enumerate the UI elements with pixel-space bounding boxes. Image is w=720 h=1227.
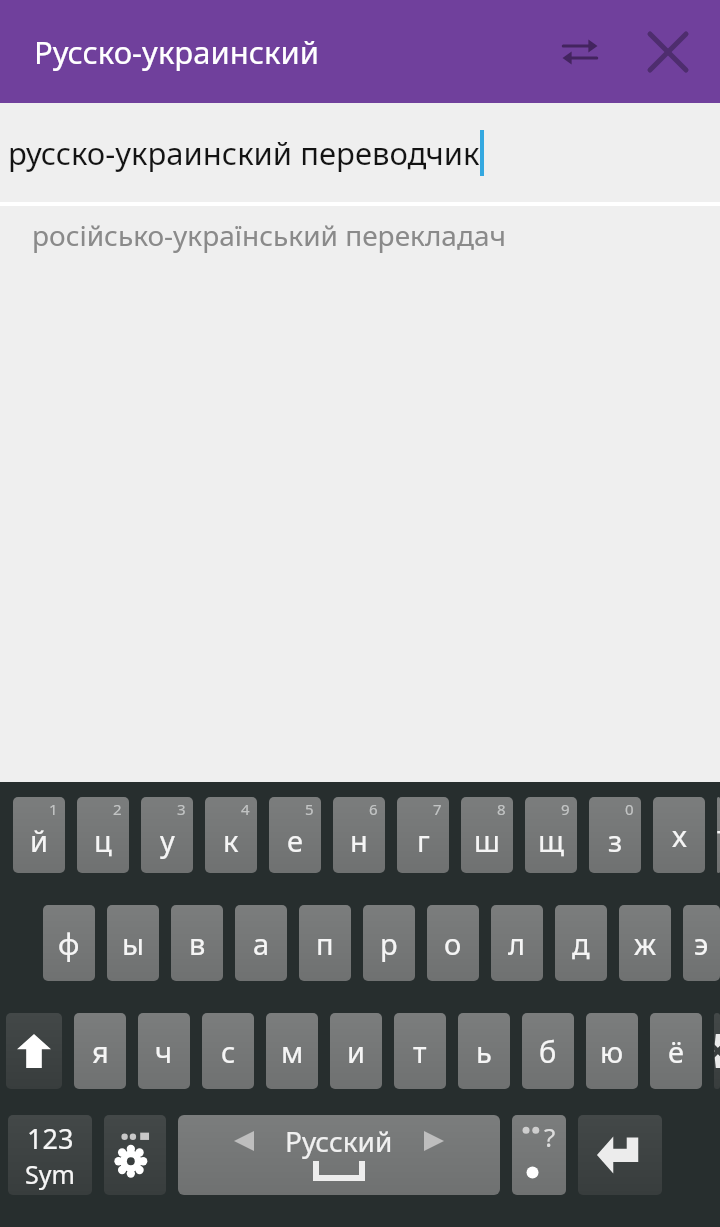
staticText: ы	[122, 924, 145, 963]
staticText: ?	[544, 1119, 556, 1154]
staticText: Русский	[285, 1122, 393, 1160]
button[interactable]: 0	[589, 797, 641, 873]
button[interactable]: ю	[586, 1013, 638, 1089]
button[interactable]: ж	[619, 905, 671, 981]
button[interactable]: Shift	[6, 1013, 62, 1089]
staticText: й	[30, 821, 49, 860]
staticText: Sym	[25, 1157, 75, 1191]
button[interactable]: я	[74, 1013, 126, 1089]
staticText: щ	[538, 821, 565, 860]
button[interactable]: Settings	[104, 1115, 166, 1195]
button[interactable]: 2	[77, 797, 129, 873]
button[interactable]: Close	[636, 20, 700, 84]
button[interactable]: ч	[138, 1013, 190, 1089]
button[interactable]: л	[491, 905, 543, 981]
button[interactable]: 1	[13, 797, 65, 873]
staticText: 6	[369, 799, 378, 819]
staticText: у	[160, 821, 175, 860]
staticText: э	[694, 924, 709, 963]
button[interactable]: 5	[269, 797, 321, 873]
staticText: я	[92, 1032, 109, 1071]
button[interactable]: Swap languages	[548, 20, 612, 84]
staticText: с	[221, 1032, 236, 1071]
staticText: Русско-украинский	[34, 31, 319, 73]
button[interactable]: 3	[141, 797, 193, 873]
button[interactable]: х	[653, 797, 705, 873]
staticText: 0	[625, 799, 634, 819]
staticText: ь	[476, 1032, 492, 1071]
button[interactable]: с	[202, 1013, 254, 1089]
button[interactable]: э	[683, 905, 720, 981]
staticText: р	[380, 924, 398, 963]
button[interactable]: ъ	[717, 797, 720, 873]
staticText: ч	[155, 1032, 173, 1071]
button[interactable]: Space	[178, 1115, 500, 1195]
button[interactable]: ы	[107, 905, 159, 981]
staticText: ц	[94, 821, 112, 860]
staticText: и	[347, 1032, 366, 1071]
button[interactable]: р	[363, 905, 415, 981]
staticText: 9	[561, 799, 570, 819]
staticText: 1	[49, 799, 58, 819]
staticText: л	[508, 924, 526, 963]
staticText: н	[350, 821, 368, 860]
staticText: 4	[241, 799, 250, 819]
staticText: а	[253, 924, 270, 963]
button[interactable]: 8	[461, 797, 513, 873]
staticText: 5	[305, 799, 314, 819]
button[interactable]: Punctuation	[512, 1115, 566, 1195]
button[interactable]: Enter	[578, 1115, 662, 1195]
button[interactable]: 123	[8, 1115, 92, 1195]
button[interactable]: ф	[43, 905, 95, 981]
button[interactable]: о	[427, 905, 479, 981]
staticText: п	[316, 924, 334, 963]
staticText: б	[539, 1032, 557, 1071]
staticText: російсько-український перекладач	[32, 216, 506, 254]
staticText: ю	[600, 1032, 624, 1071]
staticText: русско-украинский переводчик	[8, 132, 480, 174]
button[interactable]: 7	[397, 797, 449, 873]
button[interactable]: а	[235, 905, 287, 981]
staticText: о	[444, 924, 462, 963]
button[interactable]: б	[522, 1013, 574, 1089]
staticText: г	[417, 821, 430, 860]
staticText: т	[413, 1032, 427, 1071]
button[interactable]: Backspace	[714, 1013, 720, 1089]
button[interactable]: 4	[205, 797, 257, 873]
button[interactable]: д	[555, 905, 607, 981]
staticText: ё	[668, 1032, 684, 1071]
staticText: ш	[474, 821, 500, 860]
staticText: м	[281, 1032, 304, 1071]
button[interactable]: т	[394, 1013, 446, 1089]
staticText: д	[572, 924, 590, 963]
staticText: 3	[177, 799, 186, 819]
button[interactable]: м	[266, 1013, 318, 1089]
staticText: в	[189, 924, 206, 963]
staticText: е	[287, 821, 303, 860]
button[interactable]: 9	[525, 797, 577, 873]
button[interactable]: в	[171, 905, 223, 981]
staticText: х	[672, 816, 687, 855]
staticText: з	[608, 821, 623, 860]
button[interactable]: 6	[333, 797, 385, 873]
staticText: ф	[58, 924, 80, 963]
button[interactable]: ь	[458, 1013, 510, 1089]
staticText: ж	[634, 924, 657, 963]
button[interactable]: и	[330, 1013, 382, 1089]
staticText: 123	[27, 1120, 74, 1157]
staticText: 2	[113, 799, 122, 819]
staticText: ъ	[717, 816, 720, 855]
staticText: к	[223, 821, 239, 860]
button[interactable]: п	[299, 905, 351, 981]
button[interactable]: ё	[650, 1013, 702, 1089]
staticText: 8	[497, 799, 506, 819]
staticText: 7	[433, 799, 442, 819]
